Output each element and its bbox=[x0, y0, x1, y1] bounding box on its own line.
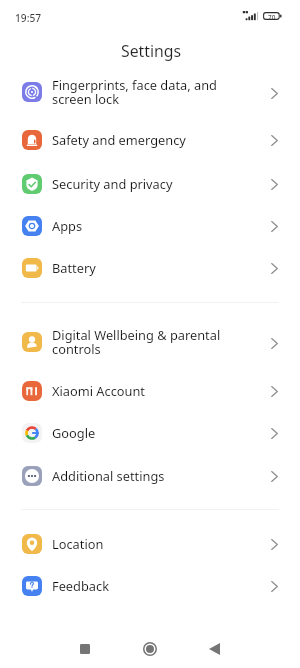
staticText: Security and privacy bbox=[52, 175, 271, 192]
button[interactable]: Xiaomi Account bbox=[0, 369, 300, 412]
staticText: Safety and emergency bbox=[52, 131, 271, 148]
button[interactable]: Feedback bbox=[0, 564, 300, 607]
staticText: Apps bbox=[52, 217, 271, 234]
button[interactable]: Home bbox=[128, 630, 172, 668]
button[interactable]: Location bbox=[0, 522, 300, 565]
staticText: Settings bbox=[121, 40, 182, 62]
staticText: Battery bbox=[52, 259, 271, 276]
button[interactable]: Additional settings bbox=[0, 454, 300, 497]
button[interactable]: Fingerprints, face data, and screen lock bbox=[0, 64, 300, 120]
button[interactable]: Battery bbox=[0, 246, 300, 289]
button[interactable]: Google bbox=[0, 411, 300, 454]
staticText: Location bbox=[52, 535, 271, 552]
staticText: 70 bbox=[268, 13, 276, 22]
button[interactable]: Safety and emergency bbox=[0, 118, 300, 161]
staticText: Google bbox=[52, 424, 271, 441]
button[interactable]: Digital Wellbeing & parental controls bbox=[0, 314, 300, 370]
button[interactable]: Apps bbox=[0, 204, 300, 247]
staticText: Fingerprints, face data, and screen lock bbox=[52, 76, 271, 108]
staticText: Additional settings bbox=[52, 467, 271, 484]
button[interactable]: Back bbox=[192, 630, 236, 668]
button[interactable]: Security and privacy bbox=[0, 162, 300, 205]
staticText: 19:57 bbox=[15, 11, 42, 25]
staticText: Digital Wellbeing & parental controls bbox=[52, 326, 271, 358]
staticText: Feedback bbox=[52, 577, 271, 594]
staticText: Xiaomi Account bbox=[52, 382, 271, 399]
button[interactable]: Recents bbox=[63, 630, 107, 668]
